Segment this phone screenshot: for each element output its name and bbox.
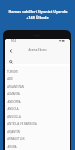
button[interactable]: TÜRKİYE <box>5 68 70 75</box>
staticText: ABD <box>7 77 13 81</box>
staticText: ALMANYA <box>7 92 20 96</box>
staticText: ANGUILLA <box>7 115 21 119</box>
button[interactable]: ANDORRA <box>5 98 70 105</box>
button[interactable]: ABD <box>5 75 70 82</box>
button[interactable]: ANTİGUA VE BARBUDA <box>5 120 70 127</box>
button[interactable]: AFGANİSTAN <box>5 83 70 90</box>
staticText: ANGOLA <box>7 107 19 111</box>
staticText: ARNAVUTLUK <box>7 137 25 141</box>
button[interactable]: ARJANTİN <box>5 128 70 135</box>
button[interactable]: ANGUILLA <box>5 113 70 120</box>
button[interactable]: ARNAVUTLUK <box>5 135 70 142</box>
staticText: +148 Ülkede <box>26 15 49 20</box>
staticText: ARJANTİN <box>7 130 20 134</box>
staticText: Hamas sahilleri Siyonist Uyarıda <box>8 9 68 14</box>
button[interactable]: ARUBA <box>5 143 70 150</box>
staticText: ANDORRA <box>7 100 21 104</box>
button[interactable]: Search <box>5 55 70 66</box>
staticText: 9:14 <box>11 39 16 42</box>
staticText: ANTİGUA VE BARBUDA <box>7 122 37 126</box>
button[interactable]: ANGOLA <box>5 105 70 112</box>
staticText: AFGANİSTAN <box>7 85 24 89</box>
button[interactable]: Back <box>6 46 16 56</box>
staticText: Arama Ekranı <box>28 48 47 52</box>
staticText: ARUBA <box>7 145 17 149</box>
staticText: TÜRKİYE <box>7 70 18 74</box>
button[interactable]: ALMANYA <box>5 90 70 97</box>
